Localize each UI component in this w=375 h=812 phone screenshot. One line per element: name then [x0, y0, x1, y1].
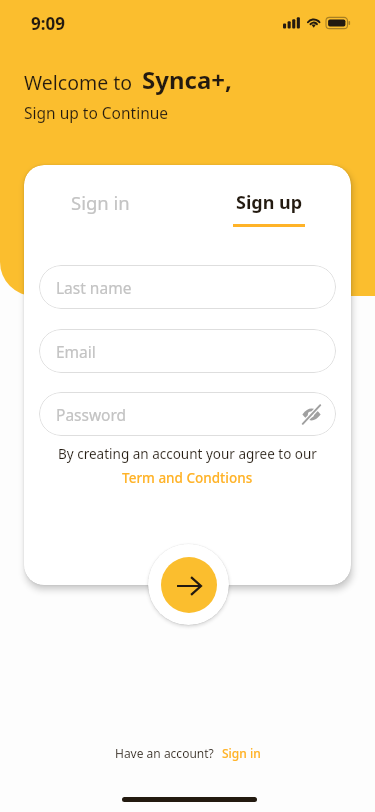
staticText: Email	[56, 341, 96, 362]
button[interactable]: Sign in	[222, 745, 261, 761]
staticText: By creating an account your agree to our	[58, 445, 317, 463]
button[interactable]: Continue	[161, 557, 217, 613]
staticText: Password	[56, 404, 127, 425]
staticText: Last name	[56, 277, 132, 298]
staticText: Sign up to Continue	[24, 102, 169, 123]
button[interactable]: Term and Condtions	[122, 469, 253, 487]
staticText: 9:09	[31, 12, 65, 35]
button[interactable]: Sign in	[36, 190, 164, 234]
button[interactable]: Last name	[39, 265, 336, 309]
button[interactable]: Email	[39, 329, 336, 373]
staticText: Sign in	[71, 190, 130, 215]
other: Show password	[302, 405, 321, 424]
staticText: Welcome to	[24, 69, 133, 96]
button[interactable]: Password	[39, 392, 336, 436]
staticText: Synca+,	[142, 63, 232, 96]
staticText: Sign up	[236, 190, 303, 215]
button[interactable]: Sign up	[205, 190, 333, 234]
staticText: Have an account?	[115, 745, 214, 761]
